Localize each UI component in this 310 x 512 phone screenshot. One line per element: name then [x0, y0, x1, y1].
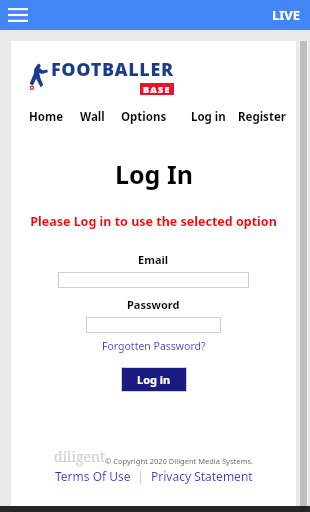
button[interactable]: Open navigation menu [5, 2, 31, 28]
button[interactable]: Privacy Statement [151, 468, 253, 484]
staticText: Email [138, 252, 169, 267]
button[interactable]: Log in [121, 367, 187, 392]
staticText: Wall [80, 109, 105, 125]
staticText: BASE [143, 83, 171, 95]
button[interactable]: Wall [80, 109, 105, 125]
staticText: Home [29, 109, 64, 125]
staticText: | [131, 468, 151, 484]
button[interactable] [86, 317, 221, 333]
button[interactable]: Forgotten Password? [102, 339, 206, 353]
staticText: Forgotten Password? [102, 339, 206, 353]
staticText: Please Log in to use the selected option [30, 213, 277, 230]
button[interactable]: Log in [191, 109, 226, 125]
button[interactable]: Register [238, 109, 286, 125]
staticText: FOOTBALLER [51, 57, 174, 82]
button[interactable]: LIVE [272, 6, 310, 24]
staticText: Password [127, 297, 180, 312]
button[interactable]: Home [29, 109, 64, 125]
staticText: Register [238, 109, 286, 125]
button[interactable] [58, 272, 249, 288]
staticText: Log In [115, 157, 193, 191]
staticText: Privacy Statement [151, 468, 253, 484]
staticText: Options [121, 109, 167, 125]
staticText: Log in [137, 372, 171, 387]
staticText: diligent [54, 447, 105, 466]
staticText: Log in [191, 109, 226, 125]
staticText: LIVE [272, 6, 301, 24]
button[interactable]: Options [121, 109, 167, 125]
staticText: © Copyright 2020 Diligent Media Systems. [105, 456, 254, 466]
staticText: Terms Of Use [55, 468, 131, 484]
button[interactable]: Terms Of Use [55, 468, 131, 484]
